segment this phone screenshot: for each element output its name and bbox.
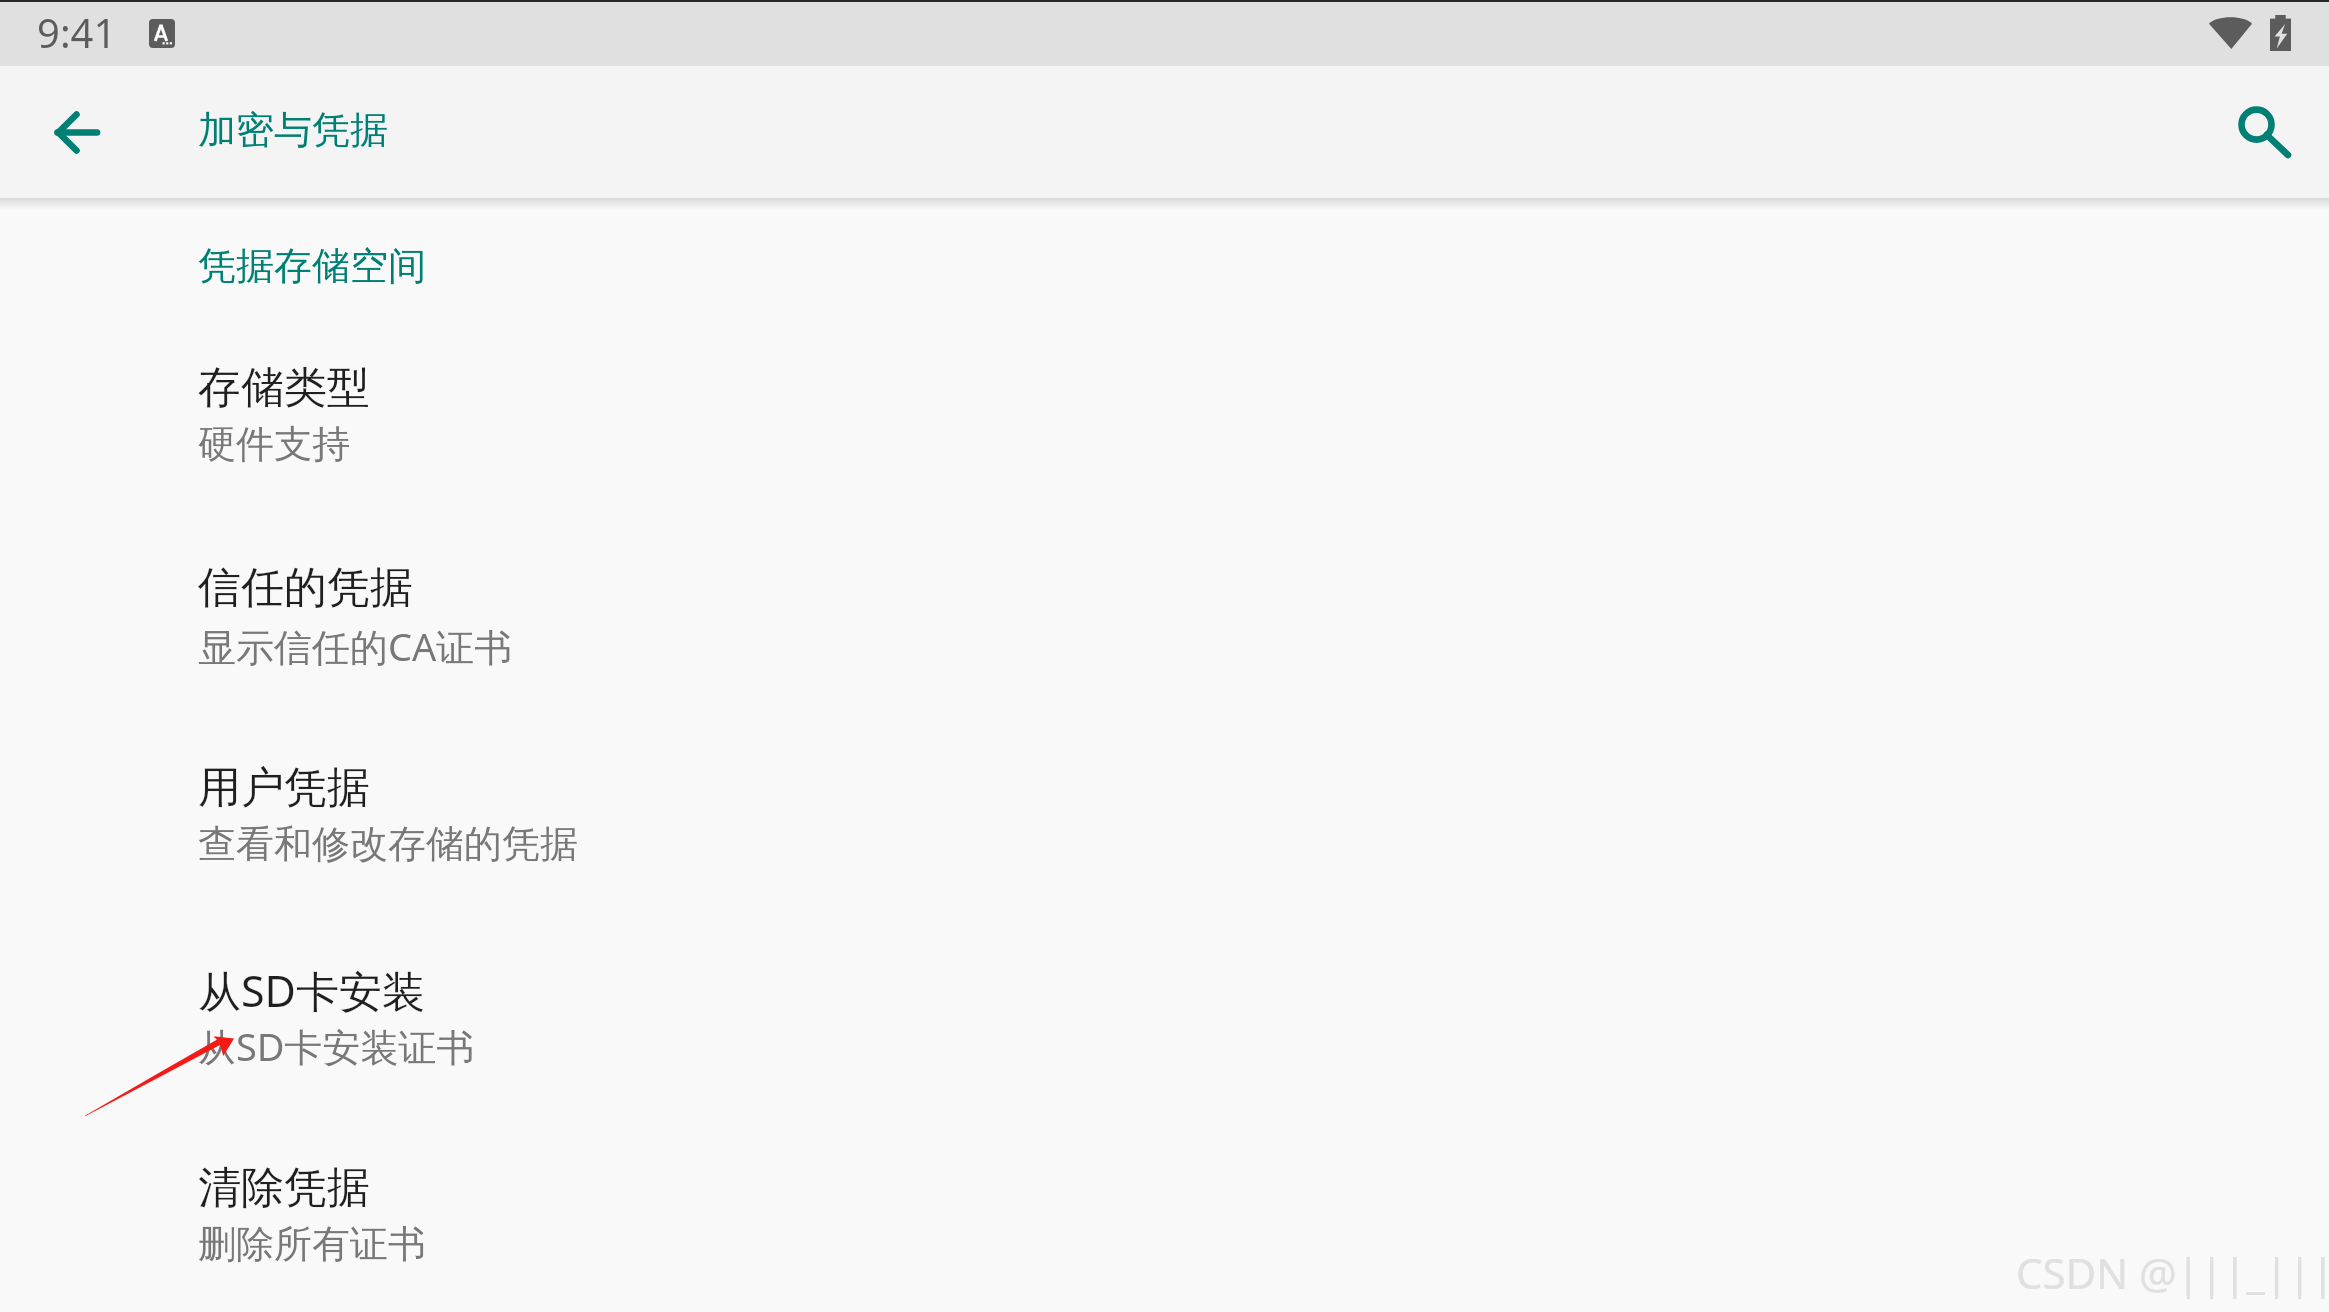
staticText: 清除凭据 bbox=[198, 1161, 370, 1215]
staticText: 加密与凭据 bbox=[198, 106, 388, 154]
button[interactable]: 信任的凭据 bbox=[0, 537, 2329, 727]
staticText: 存储类型 bbox=[198, 361, 370, 415]
button[interactable]: 用户凭据 bbox=[0, 737, 2329, 927]
staticText: 用户凭据 bbox=[198, 761, 370, 815]
button[interactable]: Search bbox=[2209, 84, 2305, 180]
button[interactable]: Back bbox=[29, 84, 125, 180]
staticText: 硬件支持 bbox=[198, 420, 350, 468]
staticText: 信任的凭据 bbox=[198, 561, 413, 615]
staticText: 凭据存储空间 bbox=[198, 242, 426, 290]
staticText: 显示信任的CA证书 bbox=[198, 620, 513, 672]
staticText: 9:41 bbox=[37, 5, 117, 59]
staticText: CSDN @|||_||| bbox=[2016, 1244, 2329, 1301]
staticText: 从SD卡安装证书 bbox=[198, 1020, 475, 1072]
button[interactable]: 从SD卡安装 bbox=[0, 937, 2329, 1127]
staticText: 查看和修改存储的凭据 bbox=[198, 820, 578, 868]
staticText: 从SD卡安装 bbox=[198, 961, 425, 1020]
staticText: 删除所有证书 bbox=[198, 1220, 426, 1268]
button[interactable]: 存储类型 bbox=[0, 337, 2329, 527]
button[interactable]: 清除凭据 bbox=[0, 1137, 2329, 1312]
